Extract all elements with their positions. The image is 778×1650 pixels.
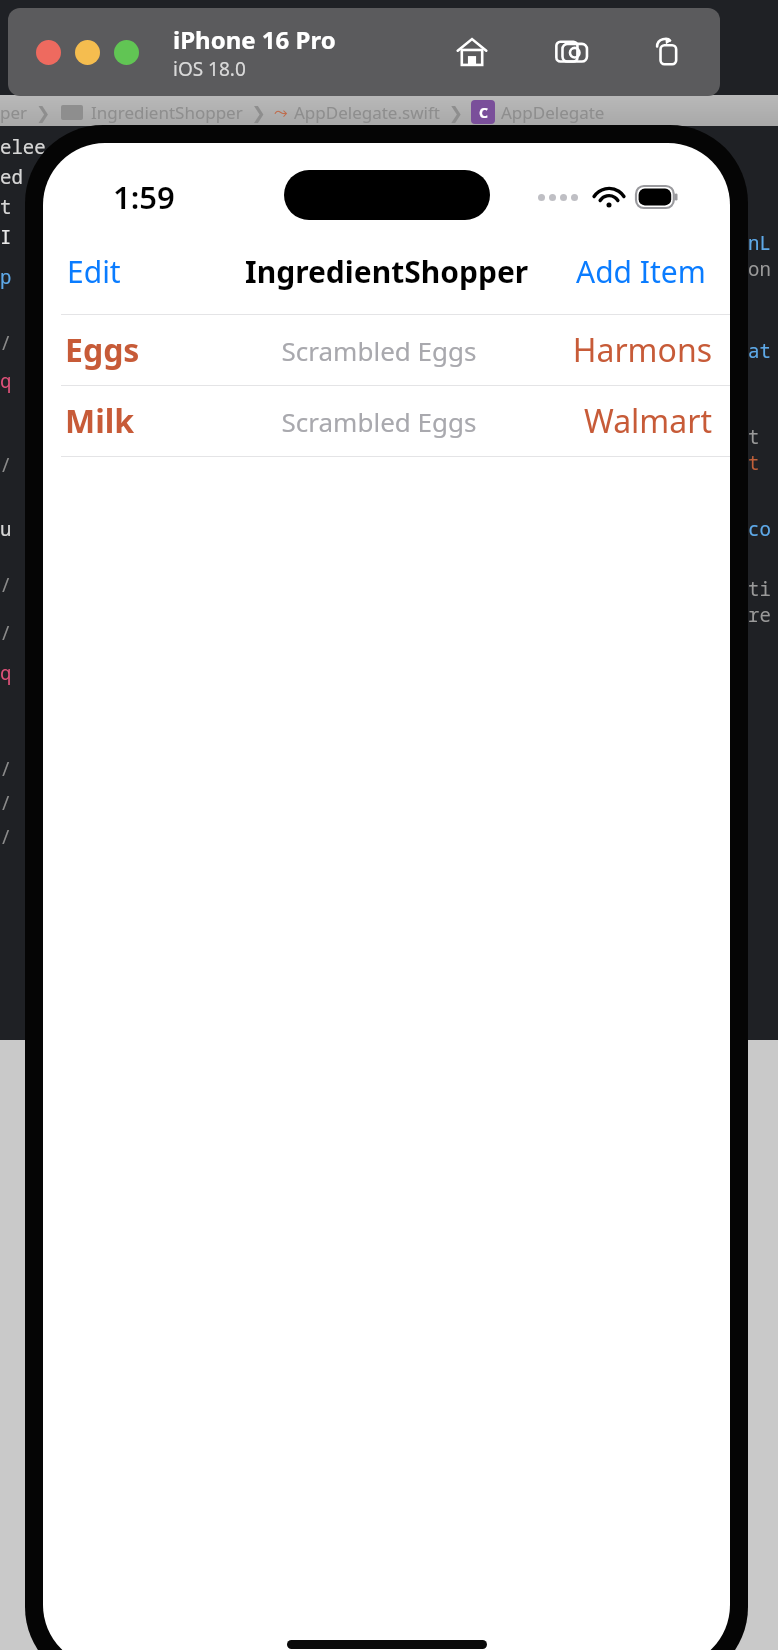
- staticText: I: [0, 224, 12, 250]
- staticText: q: [0, 660, 12, 686]
- staticText: Harmons: [514, 328, 712, 372]
- staticText: q: [0, 368, 12, 394]
- staticText: Add Item: [576, 251, 706, 291]
- staticText: /: [0, 824, 12, 850]
- button[interactable]: Window control: [114, 40, 139, 65]
- staticText: t: [0, 194, 12, 220]
- staticText: at: [748, 338, 771, 364]
- staticText: /: [0, 620, 12, 646]
- staticText: IngredientShopper: [245, 251, 529, 292]
- staticText: C: [479, 103, 488, 122]
- button[interactable]: Add Item: [552, 243, 730, 299]
- staticText: Scrambled Eggs: [244, 333, 514, 368]
- staticText: /: [0, 756, 12, 782]
- staticText: p: [0, 264, 12, 290]
- staticText: co: [748, 516, 771, 542]
- staticText: ⤳: [274, 104, 288, 121]
- staticText: Milk: [65, 399, 244, 443]
- staticText: u: [0, 516, 12, 542]
- staticText: re: [748, 602, 771, 628]
- staticText: /: [0, 572, 12, 598]
- staticText: t: [748, 450, 760, 476]
- staticText: on: [748, 256, 771, 282]
- staticText: Edit: [67, 251, 121, 291]
- button[interactable]: Edit: [43, 243, 145, 299]
- staticText: per ❯: [0, 101, 51, 124]
- staticText: /: [0, 452, 12, 478]
- staticText: AppDelegate.swift ❯: [294, 101, 463, 124]
- staticText: 1:59: [113, 176, 175, 218]
- staticText: iOS 18.0: [173, 56, 246, 82]
- staticText: /: [0, 790, 12, 816]
- staticText: ti: [748, 576, 771, 602]
- staticText: /: [0, 330, 12, 356]
- staticText: AppDelegate: [501, 101, 605, 124]
- staticText: elee: [0, 134, 46, 160]
- staticText: ed: [0, 164, 23, 190]
- staticText: IngredientShopper ❯: [91, 101, 266, 124]
- button[interactable]: Window control: [36, 40, 61, 65]
- staticText: Scrambled Eggs: [244, 404, 514, 439]
- staticText: Walmart: [514, 399, 712, 443]
- staticText: iPhone 16 Pro: [173, 23, 336, 56]
- staticText: Eggs: [65, 328, 244, 372]
- button[interactable]: Eggs: [43, 315, 730, 385]
- staticText: t: [748, 424, 760, 450]
- button[interactable]: Home: [452, 32, 492, 72]
- staticText: nL: [748, 230, 771, 256]
- button[interactable]: Window control: [75, 40, 100, 65]
- button[interactable]: Screenshot: [552, 32, 592, 72]
- button[interactable]: Rotate: [648, 32, 688, 72]
- button[interactable]: Milk: [43, 386, 730, 456]
